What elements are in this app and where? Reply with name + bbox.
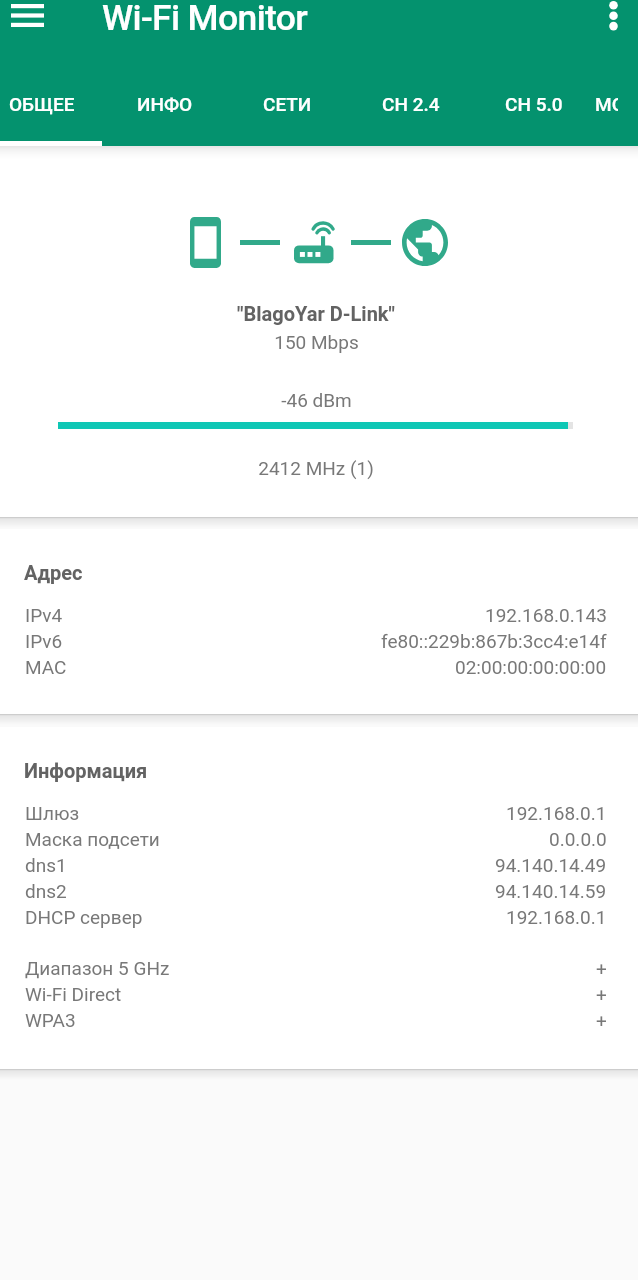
staticText: 192.168.0.1 bbox=[506, 802, 607, 824]
staticText: Шлюз bbox=[25, 802, 80, 824]
staticText: Маска подсети bbox=[25, 828, 160, 850]
button[interactable]: СЕТИ bbox=[226, 76, 349, 141]
staticText: 0.0.0.0 bbox=[549, 828, 607, 850]
button[interactable]: ИНФО bbox=[103, 76, 226, 141]
button[interactable]: CH 5.0 bbox=[472, 76, 595, 141]
staticText: + bbox=[596, 957, 607, 979]
staticText: Диапазон 5 GHz bbox=[25, 957, 170, 979]
button[interactable]: CH 2.4 bbox=[349, 76, 472, 141]
staticText: 192.168.0.1 bbox=[506, 906, 607, 928]
staticText: Адрес bbox=[24, 561, 83, 584]
staticText: DHCP сервер bbox=[25, 906, 143, 928]
staticText: dns2 bbox=[25, 880, 67, 902]
staticText: IPv4 bbox=[25, 604, 63, 626]
staticText: СЕТИ bbox=[263, 93, 312, 115]
staticText: ИНФО bbox=[137, 93, 193, 115]
staticText: Информация bbox=[24, 759, 148, 782]
staticText: Wi-Fi Monitor bbox=[102, 0, 308, 39]
staticText: 150 Mbps bbox=[274, 331, 359, 353]
button[interactable]: ОБЩЕЕ bbox=[0, 76, 103, 141]
staticText: 2412 MHz (1) bbox=[258, 457, 374, 479]
staticText: "BlagoYar D-Link" bbox=[237, 302, 395, 325]
staticText: 94.140.14.49 bbox=[495, 854, 607, 876]
staticText: 02:00:00:00:00:00 bbox=[455, 656, 607, 678]
button[interactable]: Wi-Fi Direct bbox=[0, 981, 638, 1007]
staticText: CH 2.4 bbox=[382, 93, 440, 115]
staticText: fe80::229b:867b:3cc4:e14f bbox=[381, 630, 607, 652]
button[interactable]: More options bbox=[588, 0, 638, 41]
staticText: CH 5.0 bbox=[505, 93, 563, 115]
staticText: MAC bbox=[25, 656, 67, 678]
staticText: Wi-Fi Direct bbox=[25, 983, 122, 1005]
staticText: -46 dBm bbox=[281, 389, 352, 411]
button[interactable]: Диапазон 5 GHz bbox=[0, 955, 638, 981]
staticText: + bbox=[596, 983, 607, 1005]
staticText: + bbox=[596, 1009, 607, 1031]
button[interactable]: Open navigation drawer bbox=[0, 0, 54, 41]
staticText: МОЩН bbox=[595, 93, 618, 115]
button[interactable]: WPA3 bbox=[0, 1007, 638, 1033]
staticText: dns1 bbox=[25, 854, 67, 876]
staticText: 94.140.14.59 bbox=[495, 880, 607, 902]
button[interactable]: МОЩН bbox=[595, 76, 618, 141]
staticText: IPv6 bbox=[25, 630, 63, 652]
staticText: ОБЩЕЕ bbox=[9, 93, 75, 115]
staticText: WPA3 bbox=[25, 1009, 76, 1031]
staticText: 192.168.0.143 bbox=[485, 604, 607, 626]
